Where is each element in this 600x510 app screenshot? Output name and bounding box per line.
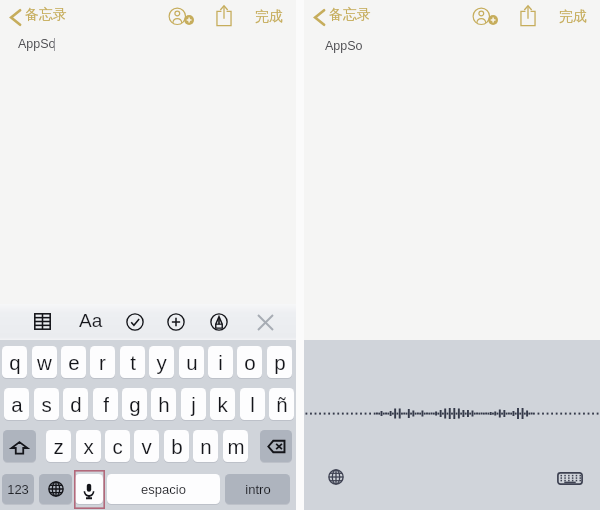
staticText: 备忘录: [25, 6, 67, 24]
staticText: l: [250, 393, 255, 416]
button[interactable]: Share: [213, 3, 235, 30]
button[interactable]: Table: [30, 311, 55, 332]
staticText: AppSo: [18, 37, 56, 51]
staticText: intro: [245, 482, 271, 497]
button[interactable]: Shift: [3, 430, 36, 462]
staticText: e: [68, 351, 80, 374]
button[interactable]: g: [122, 388, 147, 420]
button[interactable]: 完成: [252, 3, 288, 28]
staticText: z: [53, 435, 64, 458]
button[interactable]: z: [46, 430, 71, 462]
button[interactable]: Add attachment: [164, 311, 188, 335]
button[interactable]: p: [267, 346, 292, 378]
button[interactable]: 完成: [556, 3, 592, 28]
button[interactable]: ñ: [269, 388, 294, 420]
staticText: espacio: [141, 482, 186, 497]
button[interactable]: u: [179, 346, 204, 378]
staticText: r: [99, 351, 106, 374]
staticText: w: [37, 351, 52, 374]
button[interactable]: m: [223, 430, 248, 462]
button[interactable]: Checklist: [123, 311, 147, 335]
button[interactable]: i: [208, 346, 233, 378]
staticText: v: [141, 435, 152, 458]
staticText: ñ: [276, 393, 288, 416]
staticText: q: [9, 351, 21, 374]
button[interactable]: Show keyboard: [553, 465, 587, 491]
button[interactable]: Add people: [470, 3, 501, 29]
staticText: m: [227, 435, 245, 458]
staticText: h: [158, 393, 170, 416]
staticText: i: [218, 351, 223, 374]
button[interactable]: Switch language: [39, 474, 72, 504]
button[interactable]: b: [164, 430, 189, 462]
button[interactable]: e: [61, 346, 86, 378]
button[interactable]: Dictate: [75, 474, 103, 504]
button[interactable]: h: [151, 388, 176, 420]
staticText: 123: [7, 482, 29, 497]
staticText: y: [156, 351, 167, 374]
button[interactable]: v: [134, 430, 159, 462]
button[interactable]: l: [240, 388, 265, 420]
staticText: b: [171, 435, 183, 458]
button[interactable]: n: [193, 430, 218, 462]
staticText: AppSo: [325, 39, 363, 53]
button[interactable]: s: [34, 388, 59, 420]
button[interactable]: 备忘录: [304, 0, 376, 30]
staticText: u: [186, 351, 198, 374]
button[interactable]: 123: [2, 474, 34, 504]
staticText: g: [129, 393, 141, 416]
staticText: j: [191, 393, 196, 416]
button[interactable]: w: [32, 346, 57, 378]
staticText: 完成: [559, 8, 587, 26]
button[interactable]: c: [105, 430, 130, 462]
button[interactable]: o: [237, 346, 262, 378]
button[interactable]: Aa: [74, 308, 106, 335]
staticText: s: [41, 393, 52, 416]
button[interactable]: Switch language: [324, 465, 350, 491]
staticText: k: [217, 393, 228, 416]
staticText: 完成: [255, 8, 283, 26]
staticText: x: [83, 435, 94, 458]
staticText: o: [244, 351, 256, 374]
button[interactable]: d: [63, 388, 88, 420]
button[interactable]: f: [93, 388, 118, 420]
button[interactable]: Add people: [166, 3, 197, 29]
button[interactable]: Share: [517, 3, 539, 30]
staticText: n: [200, 435, 212, 458]
staticText: Aa: [79, 310, 103, 331]
staticText: f: [103, 393, 109, 416]
button[interactable]: r: [90, 346, 115, 378]
button[interactable]: espacio: [107, 474, 220, 504]
button[interactable]: Markup: [207, 311, 231, 335]
button[interactable]: a: [4, 388, 29, 420]
button[interactable]: t: [120, 346, 145, 378]
button[interactable]: q: [2, 346, 27, 378]
button[interactable]: y: [149, 346, 174, 378]
button[interactable]: x: [76, 430, 101, 462]
staticText: c: [112, 435, 123, 458]
staticText: d: [70, 393, 82, 416]
staticText: 备忘录: [329, 6, 371, 24]
staticText: t: [130, 351, 136, 374]
button[interactable]: Hide keyboard: [254, 311, 278, 335]
button[interactable]: j: [181, 388, 206, 420]
button[interactable]: intro: [225, 474, 290, 504]
button[interactable]: k: [210, 388, 235, 420]
staticText: p: [274, 351, 286, 374]
button[interactable]: Backspace: [260, 430, 292, 462]
staticText: a: [11, 393, 23, 416]
button[interactable]: 备忘录: [0, 0, 72, 30]
